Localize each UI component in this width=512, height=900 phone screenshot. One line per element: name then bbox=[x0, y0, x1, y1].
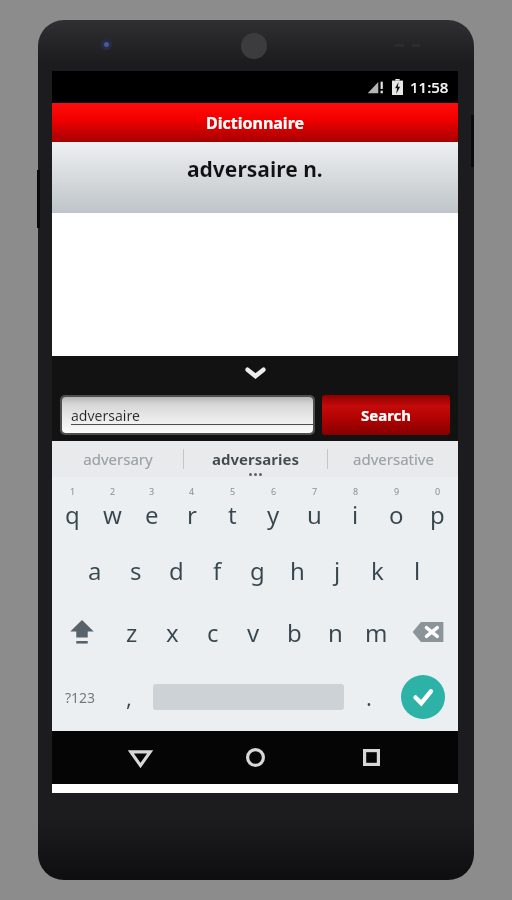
staticText: 4 bbox=[189, 485, 195, 497]
staticText: f bbox=[213, 554, 222, 587]
button[interactable]: Expand definition bbox=[52, 356, 458, 389]
button[interactable]: adversaire bbox=[62, 397, 313, 433]
staticText: l bbox=[414, 554, 421, 587]
staticText: adversative bbox=[353, 449, 434, 469]
button[interactable]: Done bbox=[401, 675, 445, 719]
button[interactable]: d bbox=[156, 539, 197, 601]
button[interactable]: Back bbox=[112, 731, 168, 784]
staticText: x bbox=[166, 616, 179, 649]
staticText: c bbox=[207, 616, 219, 649]
staticText: b bbox=[287, 616, 302, 649]
staticText: 6 bbox=[271, 485, 277, 497]
staticText: 3 bbox=[149, 485, 155, 497]
button[interactable]: l bbox=[397, 539, 437, 601]
staticText: h bbox=[290, 554, 305, 587]
staticText: u bbox=[307, 498, 322, 531]
button[interactable]: 5 bbox=[212, 477, 253, 539]
staticText: y bbox=[267, 498, 280, 531]
staticText: ?123 bbox=[65, 688, 96, 707]
button[interactable]: n bbox=[315, 601, 356, 663]
button[interactable]: 3 bbox=[132, 477, 172, 539]
button[interactable]: b bbox=[274, 601, 315, 663]
staticText: 8 bbox=[353, 485, 359, 497]
staticText: g bbox=[250, 554, 265, 587]
staticText: . bbox=[366, 682, 372, 712]
staticText: v bbox=[247, 616, 260, 649]
button[interactable]: v bbox=[233, 601, 274, 663]
staticText: adversaire n. bbox=[187, 155, 323, 184]
staticText: adversaire bbox=[71, 406, 140, 425]
staticText: r bbox=[187, 498, 197, 531]
button[interactable]: adversaire n. bbox=[52, 142, 458, 213]
button[interactable]: h bbox=[277, 539, 317, 601]
button[interactable]: Search bbox=[322, 395, 450, 435]
staticText: Search bbox=[361, 405, 412, 425]
staticText: t bbox=[228, 498, 237, 531]
button[interactable]: j bbox=[317, 539, 357, 601]
staticText: m bbox=[365, 616, 388, 649]
button[interactable]: 0 bbox=[417, 477, 458, 539]
staticText: adversaries bbox=[212, 449, 299, 469]
button[interactable]: 8 bbox=[335, 477, 376, 539]
staticText: Dictionnaire bbox=[206, 112, 305, 134]
button[interactable]: Recent apps bbox=[343, 731, 399, 784]
button[interactable]: Shift bbox=[52, 601, 112, 663]
staticText: , bbox=[126, 682, 132, 712]
button[interactable]: 4 bbox=[172, 477, 212, 539]
button[interactable]: k bbox=[357, 539, 397, 601]
button[interactable]: , bbox=[109, 663, 148, 731]
staticText: j bbox=[334, 554, 341, 587]
button[interactable]: adversaries bbox=[184, 441, 327, 477]
staticText: 1 bbox=[70, 485, 76, 497]
staticText: 11:58 bbox=[410, 77, 449, 97]
button[interactable]: f bbox=[197, 539, 237, 601]
button[interactable]: s bbox=[115, 539, 156, 601]
button[interactable]: 2 bbox=[92, 477, 132, 539]
staticText: o bbox=[389, 498, 404, 531]
staticText: 2 bbox=[110, 485, 116, 497]
button[interactable]: a bbox=[74, 539, 115, 601]
button[interactable]: x bbox=[152, 601, 192, 663]
staticText: d bbox=[169, 554, 184, 587]
staticText: k bbox=[371, 554, 384, 587]
button[interactable]: Dictionnaire bbox=[52, 103, 458, 142]
button[interactable]: g bbox=[237, 539, 277, 601]
staticText: z bbox=[126, 616, 138, 649]
staticText: adversary bbox=[83, 449, 153, 469]
button[interactable]: 9 bbox=[376, 477, 417, 539]
staticText: a bbox=[88, 554, 102, 587]
staticText: 9 bbox=[394, 485, 400, 497]
staticText: p bbox=[430, 498, 445, 531]
staticText: 7 bbox=[312, 485, 318, 497]
button[interactable]: adversative bbox=[328, 441, 458, 477]
button[interactable]: . bbox=[349, 663, 388, 731]
button[interactable]: Delete bbox=[397, 601, 458, 663]
button[interactable]: Home bbox=[227, 731, 283, 784]
button[interactable]: ?123 bbox=[52, 663, 109, 731]
staticText: n bbox=[328, 616, 343, 649]
staticText: w bbox=[103, 498, 122, 531]
staticText: i bbox=[352, 498, 359, 531]
button[interactable]: adversary bbox=[52, 441, 183, 477]
button[interactable]: m bbox=[356, 601, 397, 663]
button[interactable]: 1 bbox=[52, 477, 92, 539]
button[interactable]: 6 bbox=[253, 477, 294, 539]
button[interactable]: 7 bbox=[294, 477, 335, 539]
staticText: 0 bbox=[435, 485, 441, 497]
staticText: 5 bbox=[230, 485, 236, 497]
staticText: q bbox=[65, 498, 80, 531]
button[interactable]: z bbox=[112, 601, 152, 663]
staticText: e bbox=[145, 498, 159, 531]
staticText: s bbox=[130, 554, 142, 587]
button[interactable]: c bbox=[192, 601, 233, 663]
